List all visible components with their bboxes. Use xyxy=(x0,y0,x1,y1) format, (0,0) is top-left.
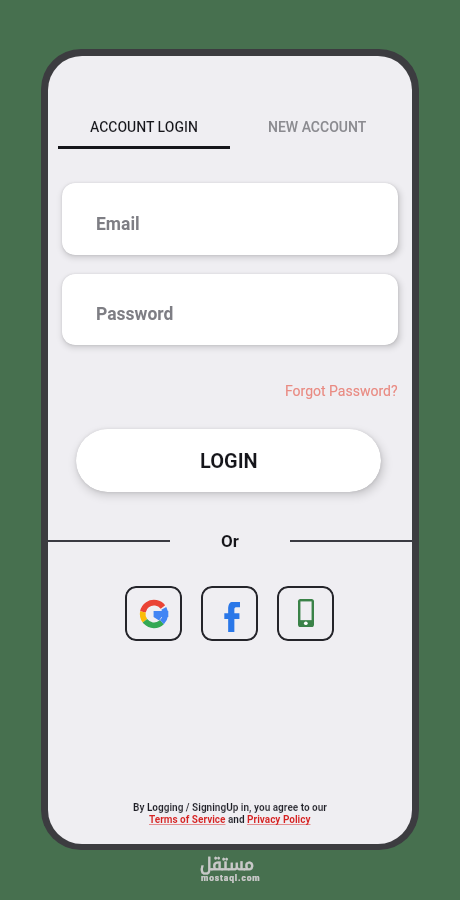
button[interactable]: NEW ACCOUNT xyxy=(247,106,387,148)
button[interactable]: Forgot Password? xyxy=(258,379,398,403)
staticText: LOGIN xyxy=(200,449,258,472)
button[interactable]: Sign in with Facebook xyxy=(201,586,258,641)
staticText: مستقل xyxy=(200,848,255,880)
staticText: Or xyxy=(221,531,239,551)
staticText: By Logging / SigningUp in, you agree to … xyxy=(133,802,327,814)
staticText: ACCOUNT LOGIN xyxy=(90,119,198,135)
staticText: Email xyxy=(96,214,140,235)
staticText: mostaql.com xyxy=(201,873,261,883)
button[interactable]: Terms of Service and Privacy Policy xyxy=(149,814,311,826)
staticText: Forgot Password? xyxy=(285,383,398,399)
staticText: NEW ACCOUNT xyxy=(268,119,367,135)
button[interactable]: Password xyxy=(62,274,398,345)
button[interactable]: Sign in with phone number xyxy=(277,586,334,641)
button[interactable]: ACCOUNT LOGIN xyxy=(58,106,230,148)
button[interactable]: LOGIN xyxy=(76,429,381,492)
button[interactable]: Email xyxy=(62,183,398,255)
staticText: Password xyxy=(96,304,174,325)
button[interactable]: Sign in with Google xyxy=(125,586,182,641)
staticText: Terms of Service and Privacy Policy xyxy=(149,814,311,826)
